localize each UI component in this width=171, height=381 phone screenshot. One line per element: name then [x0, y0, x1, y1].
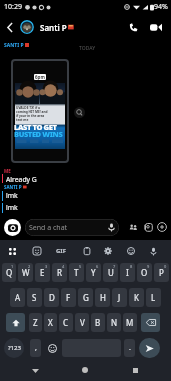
- staticText: lmk: [6, 191, 18, 200]
- button[interactable]: K: [129, 288, 144, 307]
- button[interactable]: GIF: [54, 244, 68, 258]
- staticText: 2: [28, 264, 31, 269]
- staticText: A: [15, 292, 21, 303]
- button[interactable]: Stickers: [30, 244, 44, 258]
- button[interactable]: D: [44, 288, 59, 307]
- button[interactable]: H: [95, 288, 110, 307]
- button[interactable]: Camera: [4, 219, 21, 236]
- button[interactable]: Z: [29, 313, 42, 332]
- staticText: BUSTED WINS: [14, 129, 63, 139]
- button[interactable]: Apps: [5, 244, 19, 258]
- button[interactable]: B: [91, 313, 105, 332]
- button[interactable]: G: [78, 288, 93, 307]
- button[interactable]: F: [61, 288, 76, 307]
- button[interactable]: Stickers: [142, 221, 155, 234]
- staticText: Y: [91, 267, 96, 278]
- staticText: X: [48, 317, 53, 328]
- staticText: SANTI P: [4, 42, 24, 49]
- staticText: .: [129, 343, 131, 353]
- staticText: 94%: [154, 2, 168, 12]
- button[interactable]: Video call: [145, 14, 167, 40]
- button[interactable]: ?123: [4, 338, 24, 358]
- staticText: Z: [33, 317, 38, 328]
- staticText: I: [126, 267, 129, 278]
- staticText: ?123: [8, 344, 21, 352]
- staticText: F: [66, 292, 71, 303]
- button[interactable]: Y: [86, 263, 101, 282]
- button[interactable]: T: [69, 263, 84, 282]
- button[interactable]: Q: [2, 263, 16, 282]
- staticText: 7: [113, 264, 116, 269]
- button[interactable]: Back: [0, 14, 20, 40]
- button[interactable]: Emoji: [124, 244, 138, 258]
- staticText: T: [74, 267, 79, 278]
- staticText: E: [40, 267, 45, 278]
- staticText: L: [151, 292, 156, 303]
- button[interactable]: X: [44, 313, 57, 332]
- staticText: TODAY: [79, 45, 96, 52]
- button[interactable]: Emoji: [45, 339, 60, 357]
- staticText: G: [83, 292, 89, 303]
- button[interactable]: R: [52, 263, 67, 282]
- staticText: Send a chat: [29, 223, 68, 233]
- button[interactable]: O: [137, 263, 152, 282]
- staticText: 0: [164, 264, 167, 269]
- button[interactable]: W: [18, 263, 33, 282]
- button[interactable]: Recents: [127, 362, 143, 378]
- button[interactable]: 6pm: [11, 59, 69, 163]
- button[interactable]: N: [107, 313, 121, 332]
- button[interactable]: Friends: [127, 221, 140, 234]
- staticText: M: [126, 317, 134, 328]
- button[interactable]: Comma: [30, 339, 41, 357]
- button[interactable]: Voice call: [123, 14, 143, 40]
- staticText: GIF: [56, 247, 66, 255]
- button[interactable]: E: [35, 263, 50, 282]
- staticText: K: [134, 292, 139, 303]
- staticText: 6: [96, 264, 99, 269]
- staticText: H: [100, 292, 106, 303]
- staticText: Q: [6, 267, 13, 278]
- staticText: 3: [45, 264, 48, 269]
- staticText: 10:29: [4, 2, 22, 12]
- staticText: S: [32, 292, 37, 303]
- button[interactable]: J: [112, 288, 127, 307]
- button[interactable]: S: [27, 288, 42, 307]
- button[interactable]: I: [120, 263, 135, 282]
- button[interactable]: Backspace: [141, 313, 160, 332]
- staticText: Santi P: [40, 22, 67, 33]
- button[interactable]: C: [59, 313, 73, 332]
- staticText: B: [95, 317, 101, 328]
- button[interactable]: Shift: [6, 313, 25, 332]
- staticText: 6pm: [35, 74, 45, 80]
- staticText: ,: [35, 343, 37, 353]
- button[interactable]: Clipboard: [80, 244, 94, 258]
- staticText: 1: [11, 264, 14, 269]
- staticText: U: [108, 267, 114, 278]
- button[interactable]: M: [123, 313, 137, 332]
- button[interactable]: More options: [155, 220, 169, 234]
- staticText: V: [80, 317, 85, 328]
- button[interactable]: L: [146, 288, 161, 307]
- staticText: Already G: [6, 175, 37, 184]
- staticText: C: [63, 317, 69, 328]
- staticText: LAST TO GET: [14, 122, 57, 132]
- staticText: UVALDE TX! if u coming HIT ME! and if yo…: [16, 106, 48, 122]
- button[interactable]: Period: [124, 339, 135, 357]
- button[interactable]: A: [10, 288, 25, 307]
- staticText: J: [118, 292, 121, 303]
- button[interactable]: Send a chat: [25, 219, 119, 236]
- button[interactable]: P: [154, 263, 169, 282]
- staticText: SANTI P: [4, 184, 22, 190]
- button[interactable]: Send: [139, 338, 160, 358]
- staticText: D: [49, 292, 55, 303]
- button[interactable]: Settings: [101, 244, 115, 258]
- button[interactable]: V: [75, 313, 89, 332]
- button[interactable]: Search: [74, 107, 85, 118]
- button[interactable]: Home: [77, 362, 93, 378]
- staticText: 8: [130, 264, 133, 269]
- button[interactable]: Voice input: [146, 244, 160, 258]
- button[interactable]: Back: [27, 362, 43, 378]
- button[interactable]: U: [103, 263, 118, 282]
- button[interactable]: Profile: [20, 20, 34, 34]
